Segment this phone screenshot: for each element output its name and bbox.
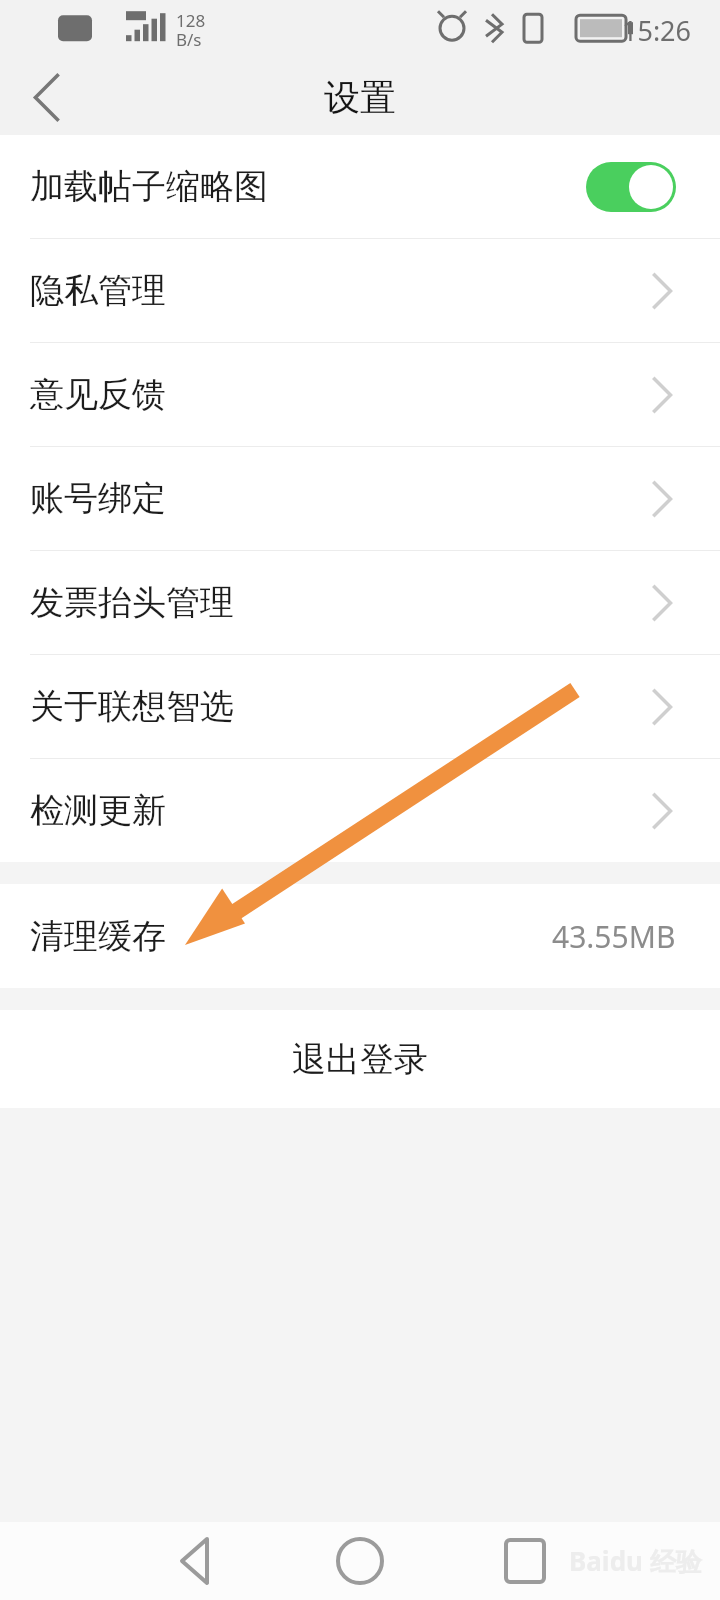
staticText: 意见反馈 (30, 373, 166, 416)
staticText: 关于联想智选 (30, 685, 234, 728)
staticText: 128 B/s (176, 9, 206, 51)
staticText: 15:26 (622, 12, 692, 49)
button[interactable]: 退出登录 (0, 1010, 720, 1108)
button[interactable]: 发票抬头管理 (0, 551, 720, 654)
staticText: 检测更新 (30, 789, 166, 832)
button[interactable]: 隐私管理 (0, 239, 720, 342)
staticText: 清理缓存 (30, 915, 166, 958)
button[interactable]: Home (325, 1526, 395, 1596)
staticText: Baidu 经验 (569, 1543, 702, 1579)
button[interactable]: 意见反馈 (0, 343, 720, 446)
button[interactable]: 加载帖子缩略图 (0, 135, 720, 238)
staticText: 加载帖子缩略图 (30, 165, 268, 208)
button[interactable]: 账号绑定 (0, 447, 720, 550)
button[interactable]: Back (0, 60, 80, 135)
staticText: 账号绑定 (30, 477, 166, 520)
button[interactable]: Recents (490, 1526, 560, 1596)
button[interactable]: 检测更新 (0, 759, 720, 862)
staticText: 隐私管理 (30, 269, 166, 312)
button[interactable]: 关于联想智选 (0, 655, 720, 758)
button[interactable]: Back (160, 1526, 230, 1596)
staticText: 43.55MB (552, 916, 676, 957)
staticText: 发票抬头管理 (30, 581, 234, 624)
staticText: 设置 (324, 75, 396, 120)
staticText: 退出登录 (292, 1038, 428, 1081)
button[interactable]: Toggle thumbnails (586, 162, 676, 212)
button[interactable]: 清理缓存 (0, 884, 720, 988)
